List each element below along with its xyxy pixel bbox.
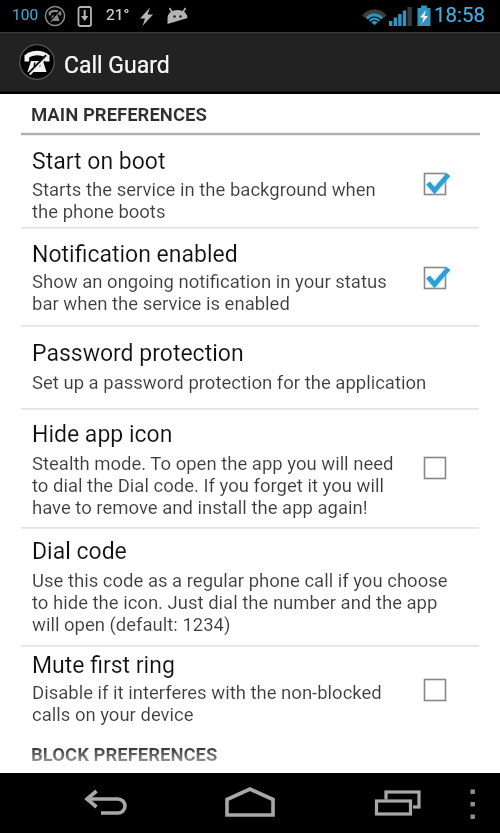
staticText: Stealth mode. To open the app you will n… bbox=[32, 453, 394, 475]
staticText: 21° bbox=[106, 6, 130, 24]
staticText: Set up a password protection for the app… bbox=[32, 372, 427, 394]
staticText: Disable if it interferes with the non-bl… bbox=[32, 682, 382, 704]
staticText: to dial the Dial code. If you forget it … bbox=[32, 475, 384, 497]
staticText: MAIN PREFERENCES bbox=[31, 104, 207, 126]
staticText: Dial code bbox=[32, 538, 127, 565]
staticText: 100 bbox=[12, 6, 39, 24]
staticText: the phone boots bbox=[32, 201, 166, 223]
staticText: Mute first ring bbox=[32, 652, 175, 679]
button[interactable] bbox=[0, 326, 500, 408]
staticText: Notification enabled bbox=[32, 241, 238, 268]
staticText: Password protection bbox=[32, 340, 244, 367]
staticText: will open (default: 1234) bbox=[32, 614, 231, 636]
staticText: Hide app icon bbox=[32, 421, 173, 448]
button[interactable] bbox=[0, 228, 500, 325]
button[interactable] bbox=[0, 646, 500, 773]
staticText: Starts the service in the background whe… bbox=[32, 179, 376, 201]
button[interactable] bbox=[0, 135, 500, 227]
staticText: Use this code as a regular phone call if… bbox=[32, 570, 448, 592]
staticText: 18:58 bbox=[434, 3, 486, 27]
staticText: to hide the icon. Just dial the number a… bbox=[32, 592, 438, 614]
button[interactable] bbox=[218, 773, 282, 833]
button[interactable] bbox=[0, 409, 500, 527]
staticText: Call Guard bbox=[64, 52, 170, 79]
button[interactable] bbox=[362, 773, 426, 833]
staticText: Start on boot bbox=[32, 148, 166, 175]
button[interactable] bbox=[450, 773, 496, 833]
staticText: calls on your device bbox=[32, 704, 194, 726]
staticText: bar when the service is enabled bbox=[32, 293, 290, 315]
staticText: BLOCK PREFERENCES bbox=[31, 744, 218, 766]
button[interactable] bbox=[0, 528, 500, 645]
staticText: have to remove and install the app again… bbox=[32, 497, 368, 519]
staticText: Show an ongoing notification in your sta… bbox=[32, 271, 387, 293]
button[interactable] bbox=[72, 773, 136, 833]
